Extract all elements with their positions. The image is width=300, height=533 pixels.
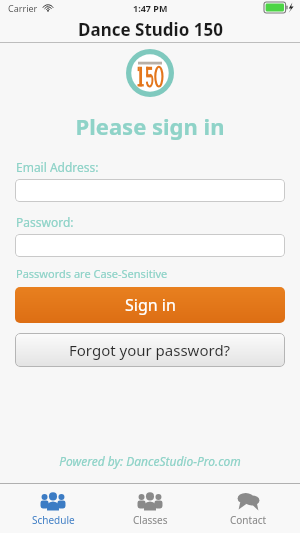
staticText: Email Address: <box>16 159 99 175</box>
staticText: Dance Studio 150 <box>78 18 223 41</box>
button[interactable]: Forgot your password? <box>15 333 285 367</box>
button[interactable]: Sign in <box>15 287 285 323</box>
staticText: Contact <box>230 513 267 527</box>
staticText: Powered by: DanceStudio-Pro.com <box>0 453 300 469</box>
staticText: 1:47 PM <box>133 2 168 14</box>
button[interactable] <box>15 234 285 257</box>
staticText: Sign in <box>125 294 176 316</box>
button[interactable]: Schedule <box>8 491 98 527</box>
staticText: Please sign in <box>0 111 300 141</box>
staticText: Password: <box>16 214 74 230</box>
button[interactable]: Contact <box>203 491 293 527</box>
staticText: Classes <box>133 513 168 527</box>
staticText: Carrier <box>8 2 38 14</box>
button[interactable] <box>15 179 285 202</box>
staticText: Forgot your password? <box>69 340 231 360</box>
staticText: Passwords are Case-Sensitive <box>16 266 168 281</box>
button[interactable]: Classes <box>105 491 195 527</box>
staticText: Schedule <box>32 513 75 527</box>
